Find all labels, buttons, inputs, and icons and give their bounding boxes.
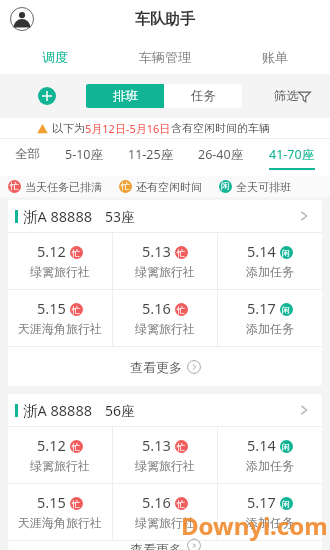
staticText: 浙A 88888 (23, 400, 93, 420)
button[interactable]: 5.16 (113, 484, 217, 540)
staticText: 5.13 (142, 435, 171, 455)
staticText: 忙 (72, 305, 81, 315)
staticText: 5.15 (37, 298, 66, 318)
staticText: 忙 (177, 442, 186, 452)
staticText: 全天可排班 (236, 180, 291, 194)
staticText: 5.12 (37, 241, 66, 261)
staticText: 5-10座 (65, 146, 103, 163)
staticText: 以下为 (52, 121, 85, 135)
staticText: 闲 (282, 499, 291, 509)
button[interactable]: 26-40座 (196, 139, 246, 176)
button[interactable]: 5.13 (113, 427, 217, 483)
staticText: 5.17 (247, 492, 276, 512)
staticText: 5.15 (37, 492, 66, 512)
button[interactable]: 41-70座 (267, 139, 317, 176)
button[interactable]: 全部 (13, 139, 42, 176)
button[interactable]: 5.14 (218, 233, 322, 289)
staticText: 绿篱旅行社 (135, 264, 195, 279)
staticText: 排班 (113, 88, 138, 104)
staticText: 26-40座 (198, 146, 244, 163)
staticText: 忙 (177, 499, 186, 509)
staticText: 绿篱旅行社 (30, 458, 90, 473)
staticText: 调度 (42, 49, 68, 65)
other: Details (296, 208, 312, 224)
staticText: 忙 (72, 248, 81, 258)
button[interactable]: 5.16 (113, 290, 217, 346)
staticText: 当天任务已排满 (25, 180, 102, 194)
staticText: 任务 (191, 88, 216, 104)
button[interactable]: 5.15 (8, 484, 112, 540)
staticText: 5.14 (247, 435, 276, 455)
staticText: 忙 (177, 248, 186, 258)
staticText: 添加任务 (246, 515, 294, 530)
button[interactable]: 筛选 (266, 88, 330, 104)
button[interactable]: 账单 (220, 42, 330, 72)
button[interactable]: 调度 (0, 42, 110, 72)
staticText: 56座 (105, 401, 136, 420)
other: Details (296, 402, 312, 418)
button[interactable]: 查看更多 (8, 347, 322, 386)
staticText: 添加任务 (246, 458, 294, 473)
staticText: 忙 (121, 181, 130, 192)
button[interactable]: 5-10座 (63, 139, 105, 176)
staticText: 闲 (282, 442, 291, 452)
staticText: 11-25座 (128, 146, 174, 163)
button[interactable]: 5.12 (8, 427, 112, 483)
staticText: 浙A 88888 (23, 206, 93, 226)
staticText: 筛选 (274, 88, 299, 104)
staticText: 忙 (72, 499, 81, 509)
button[interactable]: Profile (10, 7, 34, 31)
staticText: 添加任务 (246, 264, 294, 279)
button[interactable]: 5.17 (218, 290, 322, 346)
staticText: 含有空闲时间的车辆 (171, 121, 270, 135)
button[interactable]: 5.17 (218, 484, 322, 540)
button[interactable]: 5.14 (218, 427, 322, 483)
staticText: 绿篱旅行社 (135, 515, 195, 530)
staticText: 闲 (282, 248, 291, 258)
button[interactable]: 5.12 (8, 233, 112, 289)
staticText: 忙 (177, 305, 186, 315)
staticText: 绿篱旅行社 (135, 321, 195, 336)
staticText: 5.12 (37, 435, 66, 455)
button[interactable]: 浙A 88888 (8, 200, 322, 232)
staticText: 5.16 (142, 298, 171, 318)
staticText: 全部 (15, 146, 40, 162)
staticText: 5.16 (142, 492, 171, 512)
button[interactable]: 排班 (86, 84, 164, 108)
staticText: 闲 (282, 305, 291, 315)
staticText: 还有空闲时间 (136, 180, 202, 194)
button[interactable]: 浙A 88888 (8, 394, 322, 426)
staticText: 5.14 (247, 241, 276, 261)
button[interactable]: 11-25座 (126, 139, 176, 176)
staticText: 车辆管理 (139, 49, 191, 65)
staticText: Downyi.com (181, 509, 328, 542)
staticText: 忙 (10, 181, 19, 192)
staticText: 41-70座 (269, 146, 315, 163)
staticText: 忙 (72, 442, 81, 452)
staticText: 绿篱旅行社 (30, 264, 90, 279)
staticText: 5.17 (247, 298, 276, 318)
staticText: 添加任务 (246, 321, 294, 336)
staticText: 车队助手 (135, 10, 195, 29)
staticText: 查看更多 (130, 541, 182, 550)
button[interactable]: 5.15 (8, 290, 112, 346)
staticText: 天涯海角旅行社 (18, 321, 102, 336)
staticText: 5.13 (142, 241, 171, 261)
button[interactable]: 车辆管理 (110, 42, 220, 72)
button[interactable]: 查看更多 (8, 541, 322, 550)
button[interactable]: 任务 (164, 84, 242, 108)
staticText: 闲 (221, 181, 230, 192)
staticText: 查看更多 (130, 359, 182, 375)
button[interactable]: 5.13 (113, 233, 217, 289)
staticText: 53座 (105, 207, 136, 226)
button[interactable]: Add (38, 87, 56, 105)
staticText: 账单 (262, 49, 288, 65)
staticText: 5月12日-5月16日 (85, 121, 171, 136)
staticText: 天涯海角旅行社 (18, 515, 102, 530)
staticText: 绿篱旅行社 (135, 458, 195, 473)
